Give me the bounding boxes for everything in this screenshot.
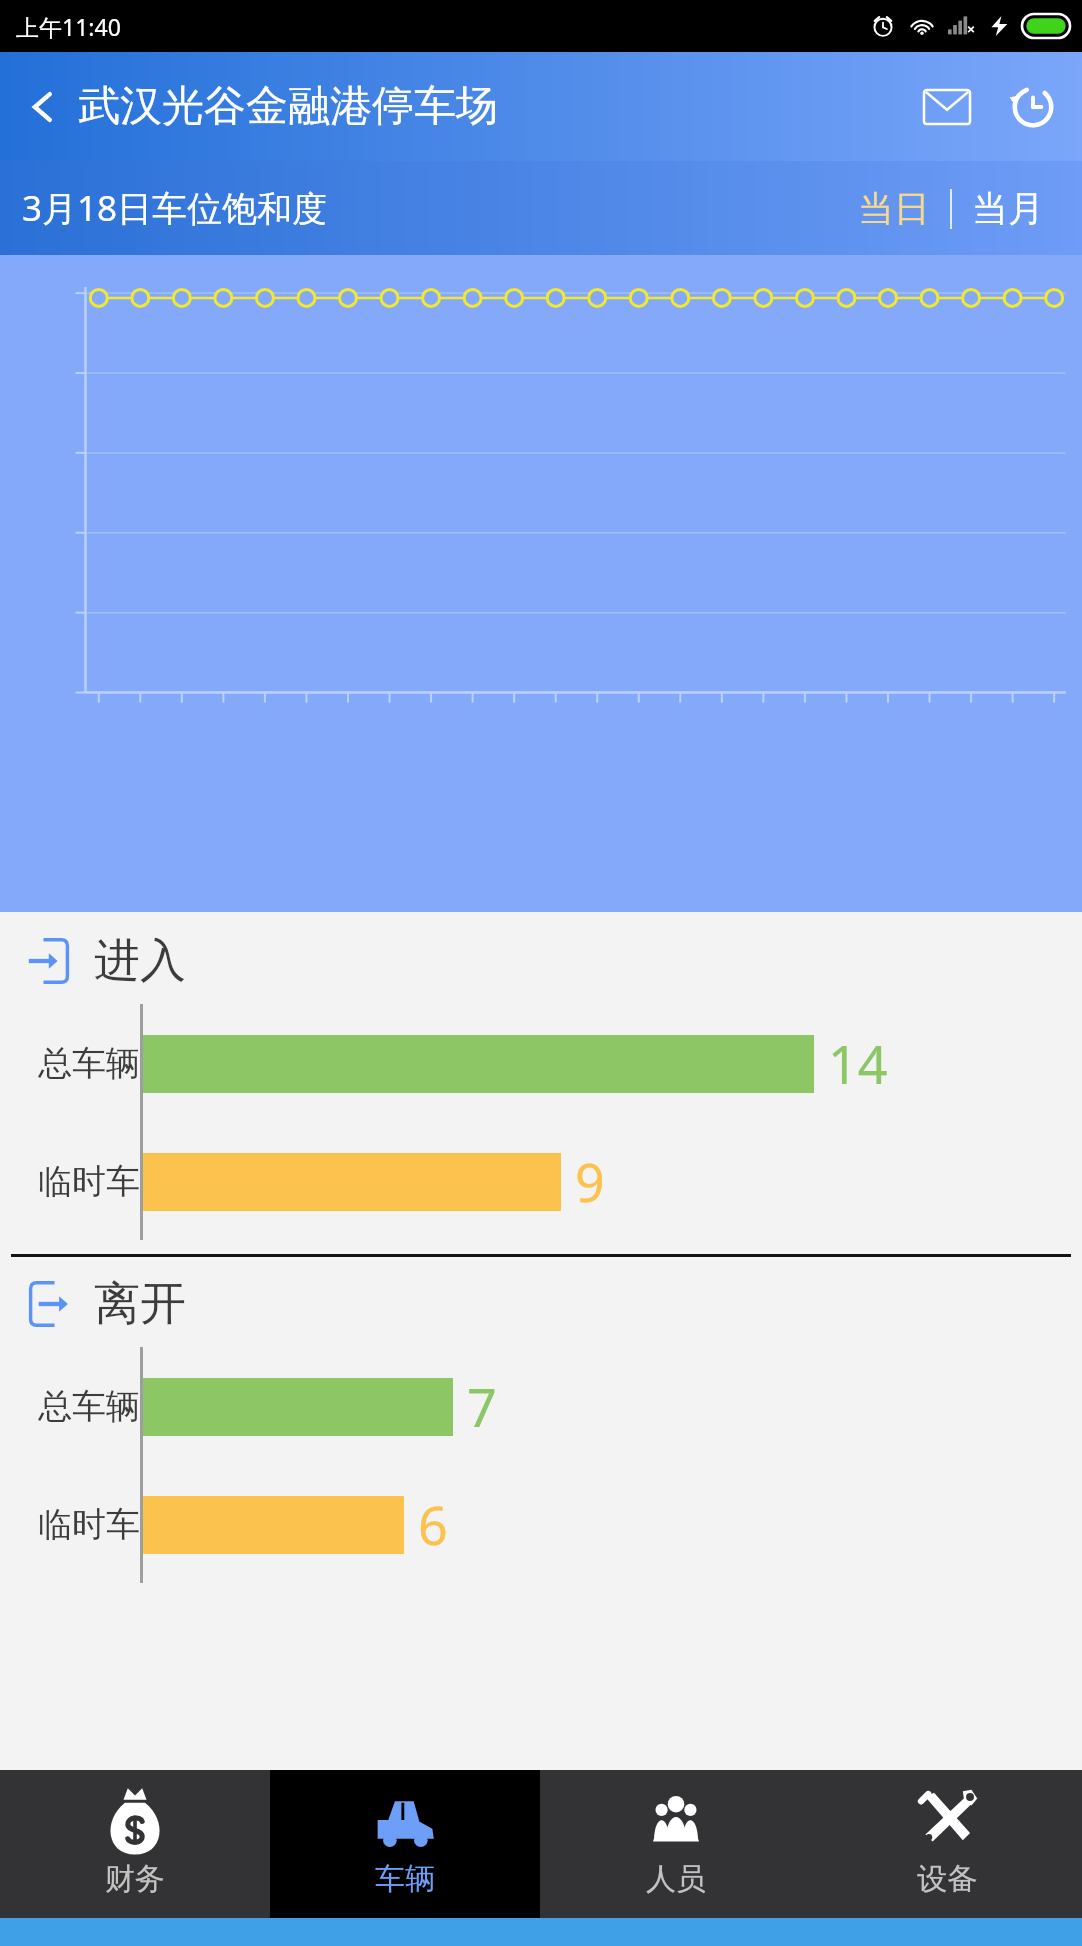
staticText: 6 <box>418 1489 448 1560</box>
button[interactable]: History <box>1002 76 1064 138</box>
button[interactable]: 临时车 <box>0 1122 1082 1240</box>
button[interactable]: 进入 <box>0 926 1082 996</box>
button[interactable]: 财务 <box>0 1770 270 1918</box>
staticText: 7 <box>467 1371 497 1442</box>
button[interactable]: 当日 <box>848 180 940 237</box>
button[interactable]: 当月 <box>962 180 1054 237</box>
staticText: 14 <box>828 1028 888 1099</box>
button[interactable]: Back <box>16 80 70 134</box>
staticText: 上午11:40 <box>16 11 121 42</box>
staticText: 车辆 <box>375 1860 435 1898</box>
staticText: 总车辆 <box>38 1042 140 1085</box>
button[interactable]: 总车辆 <box>0 1004 1082 1122</box>
staticText: 离开 <box>94 1275 186 1333</box>
staticText: 人员 <box>646 1860 706 1898</box>
staticText: 临时车 <box>38 1160 140 1203</box>
staticText: 财务 <box>105 1860 165 1898</box>
staticText: 9 <box>575 1146 605 1217</box>
button[interactable]: 临时车 <box>0 1465 1082 1583</box>
button[interactable]: 离开 <box>0 1269 1082 1339</box>
button[interactable]: 车辆 <box>270 1770 540 1918</box>
staticText: 总车辆 <box>38 1385 140 1428</box>
staticText: 临时车 <box>38 1503 140 1546</box>
button[interactable]: 人员 <box>540 1770 811 1918</box>
button[interactable]: Messages <box>916 76 978 138</box>
staticText: 武汉光谷金融港停车场 <box>78 80 498 133</box>
staticText: 当日 <box>858 186 930 231</box>
button[interactable]: 总车辆 <box>0 1347 1082 1465</box>
staticText: 3月18日车位饱和度 <box>22 184 328 232</box>
staticText: 当月 <box>972 186 1044 231</box>
button[interactable]: 设备 <box>811 1770 1082 1918</box>
staticText: 设备 <box>917 1860 977 1898</box>
staticText: 进入 <box>94 932 186 990</box>
